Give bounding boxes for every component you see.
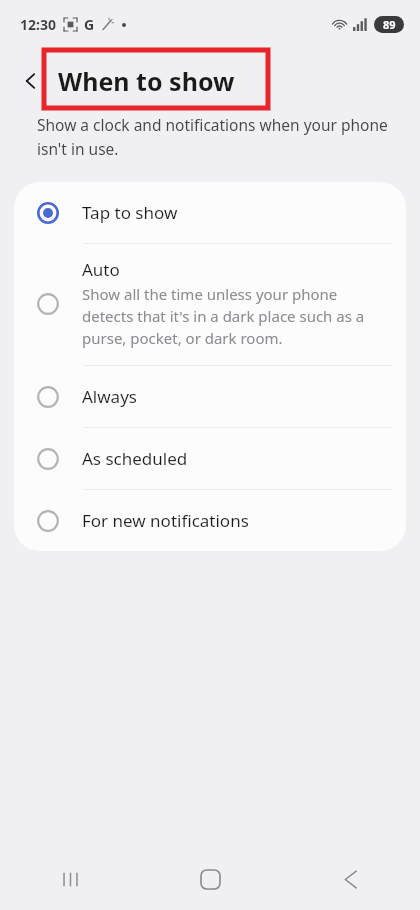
button[interactable]: Home bbox=[140, 848, 280, 910]
button[interactable]: Auto bbox=[14, 244, 406, 365]
staticText: For new notifications bbox=[82, 509, 249, 532]
staticText: Auto bbox=[82, 258, 120, 281]
button[interactable]: For new notifications bbox=[14, 490, 406, 551]
staticText: Always bbox=[82, 385, 137, 408]
staticText: 89 bbox=[383, 17, 396, 32]
staticText: When to show bbox=[58, 64, 235, 98]
staticText: Tap to show bbox=[82, 201, 178, 224]
staticText: As scheduled bbox=[82, 447, 188, 470]
button[interactable]: Back bbox=[280, 848, 420, 910]
button[interactable]: Recent apps bbox=[0, 848, 140, 910]
staticText: G bbox=[84, 15, 95, 34]
staticText: Show all the time unless your phone dete… bbox=[82, 284, 390, 349]
button[interactable]: As scheduled bbox=[14, 428, 406, 489]
button[interactable]: Tap to show bbox=[14, 182, 406, 243]
staticText: 12:30 bbox=[20, 15, 56, 34]
button[interactable]: Always bbox=[14, 366, 406, 427]
button[interactable]: Back bbox=[14, 64, 48, 98]
staticText: Show a clock and notifications when your… bbox=[37, 114, 388, 159]
